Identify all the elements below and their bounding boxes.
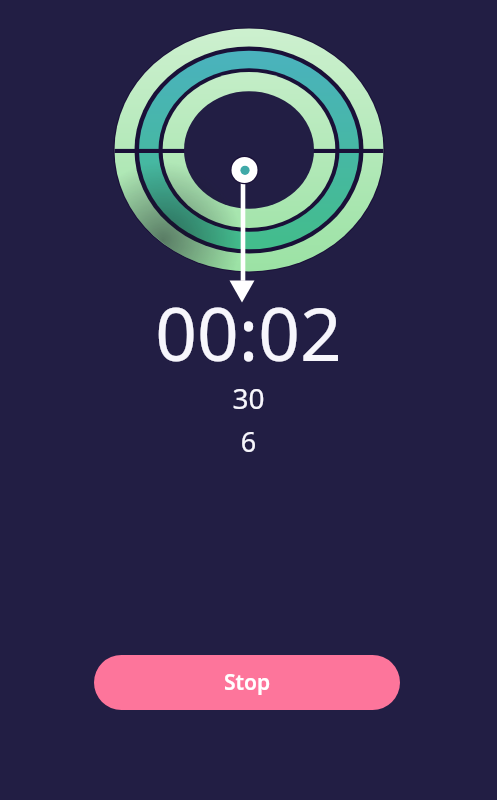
staticText: 00:02 — [0, 283, 497, 382]
button[interactable]: Stop — [94, 655, 400, 710]
staticText: 30 — [0, 379, 497, 417]
staticText: 6 — [0, 423, 497, 460]
staticText: Stop — [224, 668, 271, 697]
